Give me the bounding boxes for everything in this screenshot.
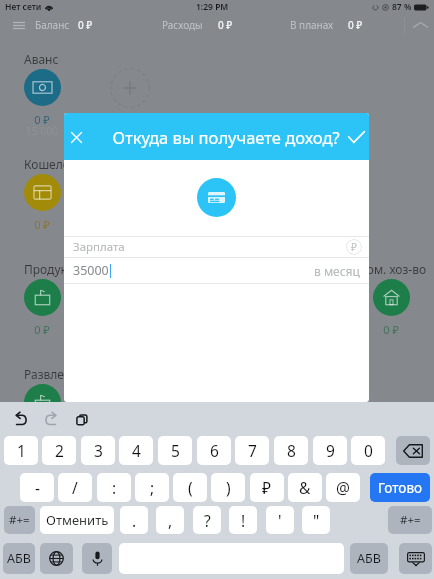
staticText: 4 <box>132 440 141 461</box>
button[interactable]: Change keyboard <box>40 543 73 574</box>
button[interactable]: Menu <box>6 14 31 36</box>
button[interactable]: Аванс <box>24 69 61 106</box>
staticText: Готово <box>378 479 423 497</box>
staticText: ₽ <box>262 477 272 498</box>
button[interactable]: Select icon <box>197 178 236 217</box>
staticText: АБВ <box>357 550 381 567</box>
staticText: 0 ₽ <box>22 217 62 232</box>
button[interactable]: 4 <box>119 436 153 465</box>
button[interactable]: / <box>58 473 92 502</box>
staticText: 3 <box>94 440 103 461</box>
staticText: 0 ₽ <box>371 322 411 337</box>
button[interactable]: ) <box>211 473 245 502</box>
staticText: ) <box>226 477 231 498</box>
staticText: ? <box>204 510 211 531</box>
staticText: ( <box>188 477 193 498</box>
button[interactable]: Отменить <box>40 506 114 534</box>
staticText: 0 ₽ <box>22 322 62 337</box>
button[interactable]: Backspace <box>396 436 430 465</box>
button[interactable]: & <box>288 473 322 502</box>
staticText: / <box>72 477 78 498</box>
staticText: 8 <box>287 440 296 461</box>
staticText: @ <box>336 477 350 498</box>
button[interactable]: 6 <box>197 436 231 465</box>
staticText: 2 <box>55 440 64 461</box>
staticText: Продукты <box>24 261 82 277</box>
button[interactable]: 3 <box>81 436 115 465</box>
button[interactable]: 7 <box>235 436 269 465</box>
button[interactable]: 0 <box>351 436 385 465</box>
staticText: 87 % <box>392 1 412 13</box>
staticText: 0 ₽ <box>348 18 363 32</box>
button[interactable]: Развлечения <box>24 384 61 421</box>
button[interactable]: 1 <box>4 436 38 465</box>
button[interactable]: Dictate <box>82 543 112 574</box>
staticText: 0 ₽ <box>78 18 93 32</box>
button[interactable]: Redo <box>36 405 66 433</box>
button[interactable]: @ <box>326 473 360 502</box>
staticText: Нет сети <box>5 1 42 13</box>
staticText: 6 <box>210 440 219 461</box>
staticText: 1 <box>17 440 26 461</box>
button[interactable]: ₽ <box>250 473 284 502</box>
button[interactable]: #+= <box>4 506 35 534</box>
button[interactable]: Готово <box>370 473 430 502</box>
staticText: В планах <box>290 18 334 32</box>
staticText: 7 <box>248 440 257 461</box>
button[interactable]: Hide keyboard <box>399 543 432 574</box>
button[interactable]: Collapse <box>406 14 434 36</box>
staticText: ₽ <box>351 240 357 254</box>
staticText: 9 <box>326 440 335 461</box>
staticText: Отменить <box>46 511 109 529</box>
button[interactable]: " <box>302 506 330 534</box>
button[interactable]: Баланс <box>32 14 96 36</box>
button[interactable]: , <box>156 506 184 534</box>
button[interactable]: В планах <box>287 14 366 36</box>
staticText: 0 <box>364 440 373 461</box>
button[interactable]: ? <box>193 506 221 534</box>
button[interactable]: Кошелек <box>24 174 61 211</box>
button[interactable]: 8 <box>274 436 308 465</box>
staticText: 1:29 PM <box>196 1 229 13</box>
button[interactable]: 2 <box>42 436 76 465</box>
staticText: 5 <box>171 440 180 461</box>
button[interactable]: Расходы <box>159 14 236 36</box>
staticText: Зарплата <box>73 239 346 255</box>
button[interactable]: Paste <box>66 405 96 433</box>
button[interactable]: Close <box>64 116 88 158</box>
button[interactable]: ! <box>229 506 257 534</box>
staticText: . <box>132 510 137 531</box>
staticText: Дом. хоз-во <box>358 261 427 277</box>
staticText: & <box>299 477 311 498</box>
staticText: Откуда вы получаете доход? <box>112 126 340 148</box>
button[interactable]: Undo <box>6 405 36 433</box>
button[interactable]: ( <box>173 473 207 502</box>
staticText: - <box>35 477 40 498</box>
button[interactable]: Confirm <box>342 116 369 158</box>
button[interactable]: : <box>97 473 131 502</box>
staticText: " <box>313 510 320 531</box>
staticText: ; <box>150 477 155 498</box>
button[interactable]: АБВ <box>350 543 388 574</box>
staticText: ' <box>278 510 282 531</box>
button[interactable]: - <box>20 473 54 502</box>
staticText: #+= <box>9 512 30 528</box>
button[interactable]: Дом. хоз-во <box>373 279 410 316</box>
staticText: 35000 <box>73 262 109 279</box>
staticText: Расходы <box>162 18 203 32</box>
button[interactable]: ' <box>266 506 294 534</box>
button[interactable]: АБВ <box>3 543 35 574</box>
staticText: #+= <box>400 512 421 528</box>
staticText: , <box>168 510 173 531</box>
button[interactable]: #+= <box>388 506 432 534</box>
button[interactable]: 9 <box>313 436 347 465</box>
staticText: АБВ <box>7 550 31 567</box>
button[interactable]: Currency <box>346 239 362 255</box>
button[interactable]: Продукты <box>24 279 61 316</box>
staticText: Баланс <box>35 18 70 32</box>
button[interactable]: . <box>120 506 148 534</box>
button[interactable]: ; <box>135 473 169 502</box>
button[interactable]: 5 <box>158 436 192 465</box>
